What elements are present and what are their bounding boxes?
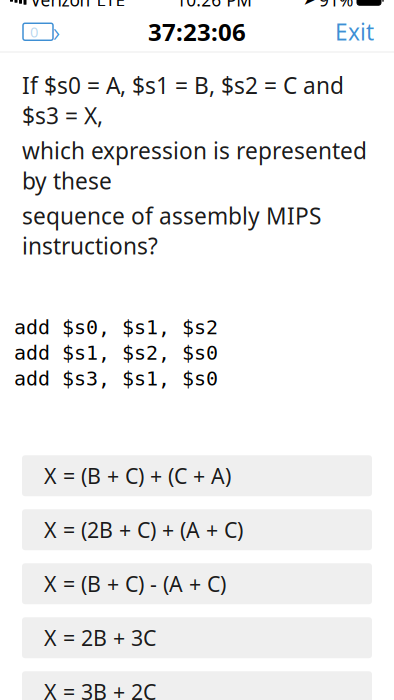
staticText: which expression is represented by these xyxy=(22,135,367,196)
staticText: 0 xyxy=(30,22,38,41)
staticText: add $s3, $s1, $s0 xyxy=(14,367,218,390)
staticText: LTE xyxy=(96,0,125,11)
button[interactable]: X = (B + C) - (A + C) xyxy=(22,563,372,604)
staticText: X = 3B + 2C xyxy=(44,678,156,700)
staticText: X = (2B + C) + (A + C) xyxy=(44,516,243,544)
staticText: sequence of assembly MIPS instructions? xyxy=(22,201,321,261)
staticText: Exit xyxy=(335,17,374,47)
staticText: add $s1, $s2, $s0 xyxy=(14,342,218,364)
button[interactable]: X = (B + C) + (C + A) xyxy=(22,455,372,496)
staticText: X = (B + C) - (A + C) xyxy=(44,570,226,598)
staticText: 91% xyxy=(319,0,353,11)
staticText: add $s0, $s1, $s2 xyxy=(14,316,218,339)
staticText: If $s0 = A, $s1 = B, $s2 = C and $s3 = X… xyxy=(22,70,344,130)
button[interactable]: X = 3B + 2C xyxy=(22,671,372,700)
staticText: X = (B + C) + (C + A) xyxy=(44,462,231,490)
staticText: X = 2B + 3C xyxy=(44,624,156,652)
button[interactable]: X = (2B + C) + (A + C) xyxy=(22,509,372,550)
staticText: Verizon xyxy=(30,0,90,11)
staticText: 10:26 PM xyxy=(176,0,252,11)
staticText: 37:23:06 xyxy=(148,16,246,48)
button[interactable]: Exit xyxy=(321,9,388,55)
staticText: ➤ xyxy=(303,0,315,8)
staticText: › xyxy=(53,14,60,49)
button[interactable]: Flagged questions xyxy=(6,15,70,49)
button[interactable]: X = 2B + 3C xyxy=(22,617,372,658)
